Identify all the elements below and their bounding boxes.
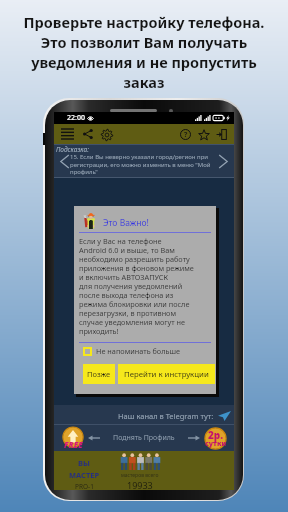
button[interactable]: мастеров всего xyxy=(114,453,166,491)
button[interactable]: Help xyxy=(179,128,192,141)
staticText: Наш канал в Telegram тут: xyxy=(118,411,214,421)
staticText: 15. Если Вы неверно указали город/регион… xyxy=(70,153,211,175)
button[interactable]: Exit xyxy=(215,128,228,141)
staticText: 22:00 xyxy=(67,113,85,123)
staticText: ? xyxy=(184,130,188,140)
staticText: мастеров всего xyxy=(121,472,159,479)
button[interactable]: Free profile boost xyxy=(62,427,84,449)
staticText: ВЫ xyxy=(78,458,90,468)
button[interactable]: Paid profile boost xyxy=(204,427,227,450)
staticText: 19933 xyxy=(127,479,153,491)
staticText: Подсказка: xyxy=(56,145,89,154)
button[interactable]: Next tip xyxy=(218,155,228,168)
staticText: Не напоминать больше xyxy=(96,346,180,356)
staticText: 2р. xyxy=(208,428,224,442)
button[interactable]: Перейти к инструкции xyxy=(118,364,215,384)
button[interactable]: ВЫ xyxy=(60,458,108,491)
button[interactable]: Позже xyxy=(83,364,115,384)
staticText: Позже xyxy=(87,369,111,379)
staticText: PRO-1 xyxy=(75,482,94,491)
staticText: Перейти к инструкции xyxy=(124,369,209,380)
staticText: МАСТЕР xyxy=(69,470,100,480)
staticText: Если у Вас на телефоне Android 6.0 и выш… xyxy=(79,236,194,337)
staticText: сутки xyxy=(205,439,227,449)
button[interactable]: Favorites xyxy=(197,128,210,141)
button[interactable]: Settings xyxy=(100,128,113,141)
staticText: Это Важно! xyxy=(103,217,149,229)
staticText: Проверьте настройку телефона. Это позвол… xyxy=(0,12,288,92)
button[interactable]: Menu xyxy=(60,127,74,141)
button[interactable]: Поднять Профиль xyxy=(113,433,175,443)
button[interactable]: Previous tip xyxy=(60,155,70,168)
button[interactable]: Share xyxy=(82,128,94,140)
button[interactable]: Не напоминать больше xyxy=(83,346,180,356)
button[interactable]: Наш канал в Telegram тут: xyxy=(54,405,234,425)
staticText: FREE xyxy=(64,439,83,450)
